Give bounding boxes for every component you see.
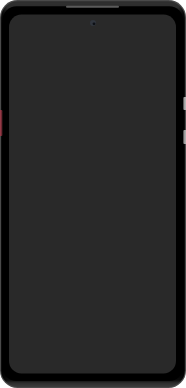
- button[interactable]: Phone device: [0, 0, 186, 388]
